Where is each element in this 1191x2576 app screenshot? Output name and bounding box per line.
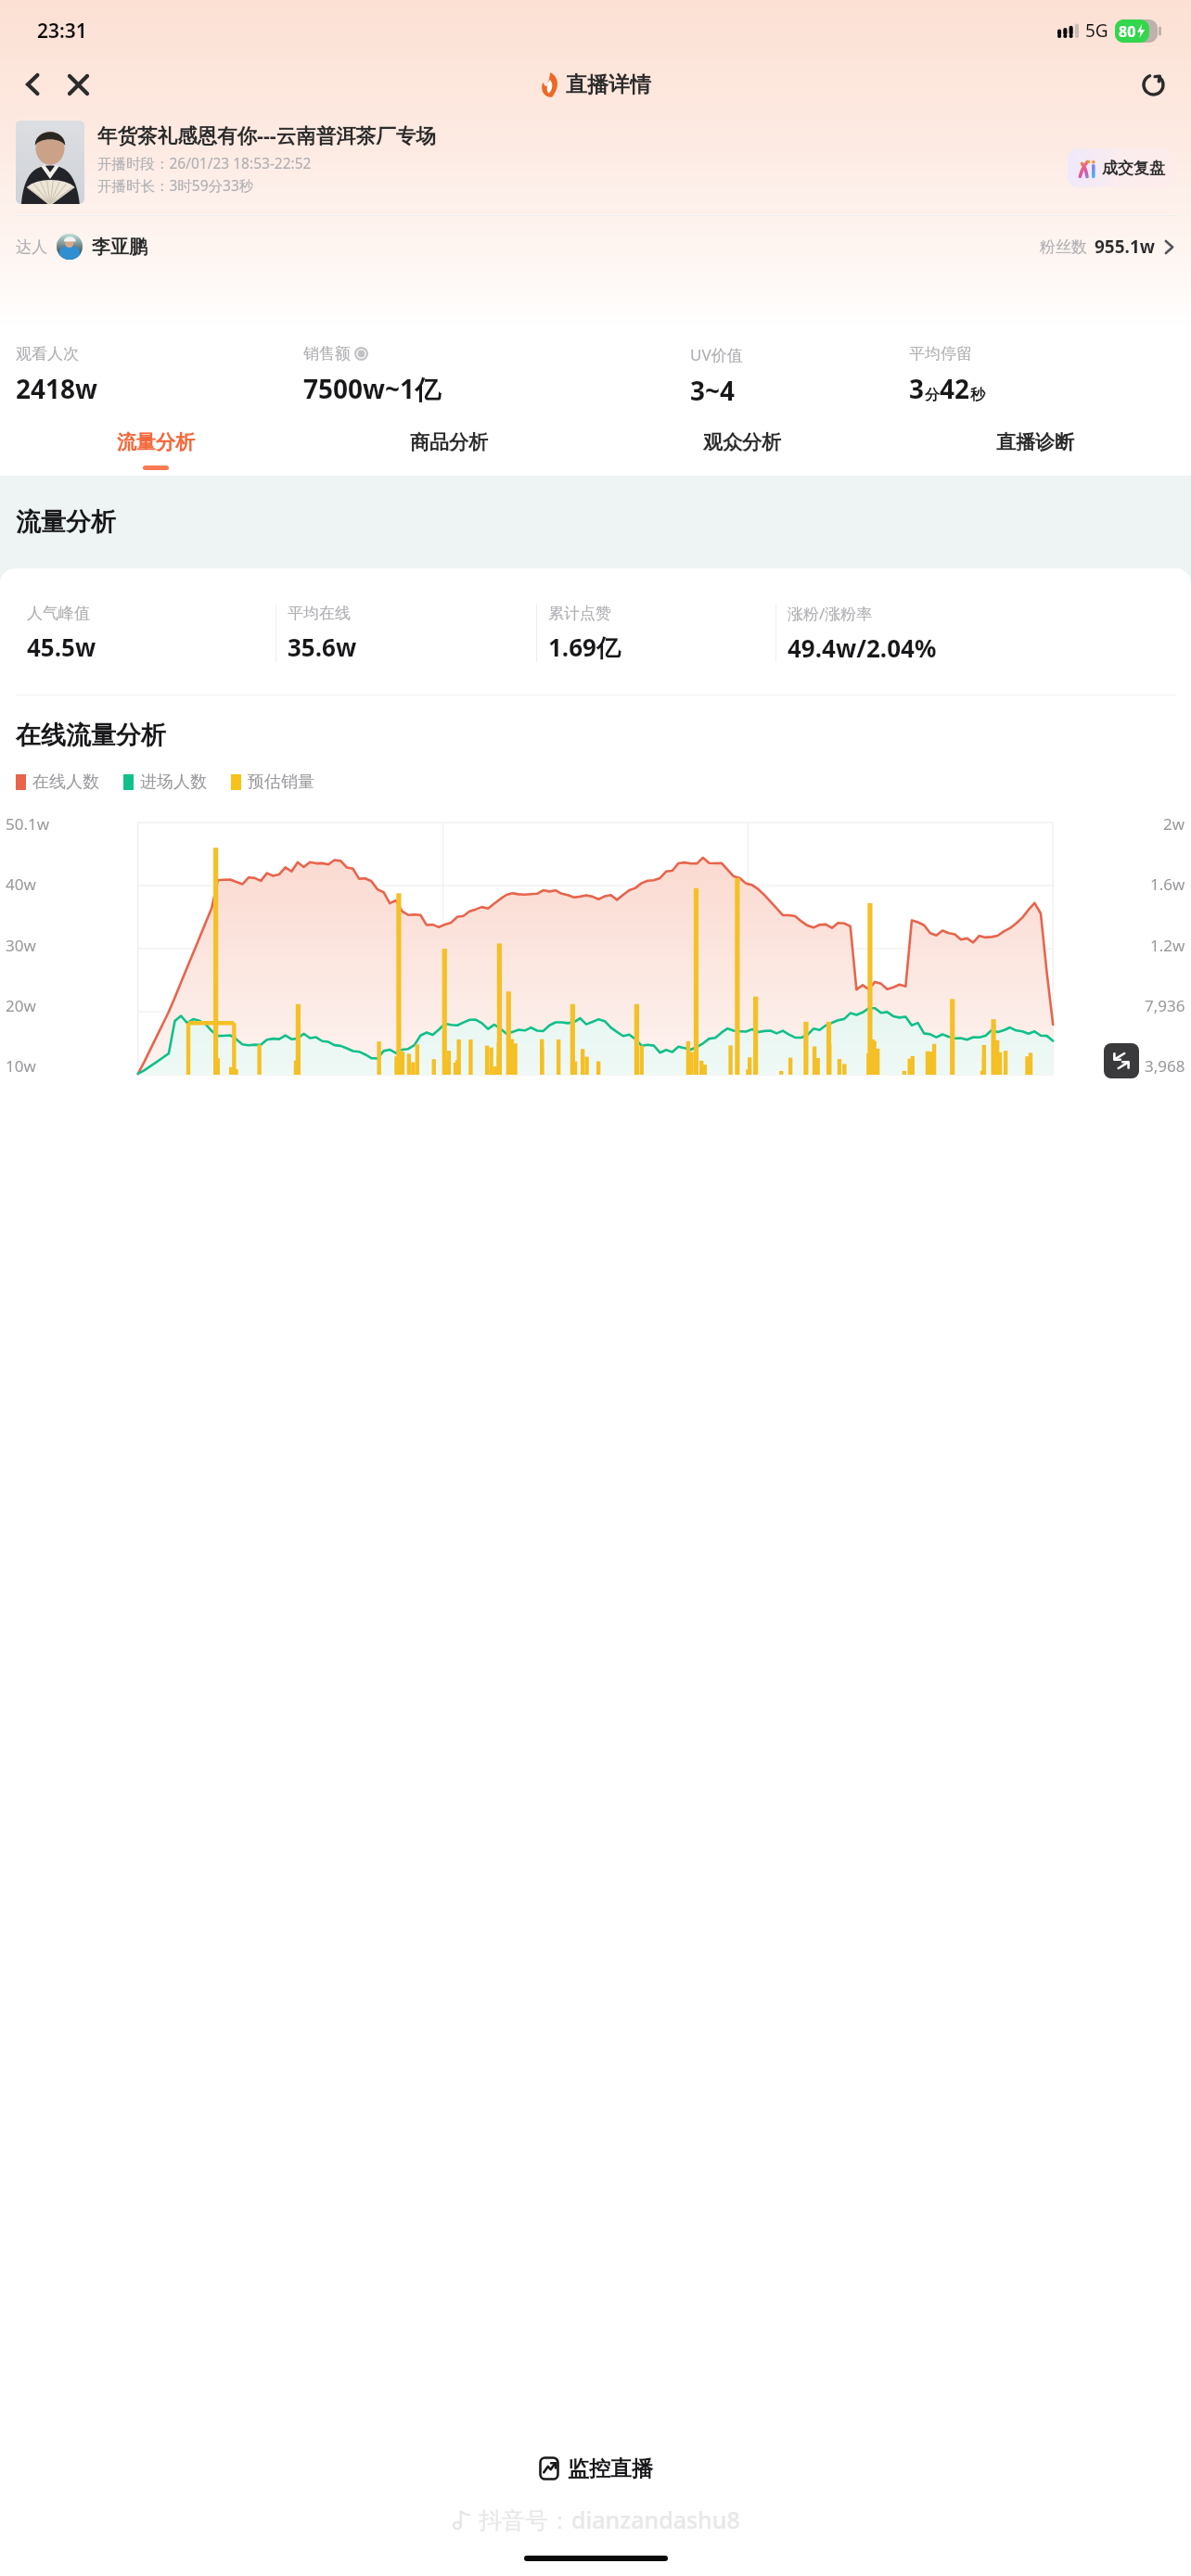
staticText: 平均在线 bbox=[288, 604, 351, 623]
staticText: 直播诊断 bbox=[996, 430, 1074, 454]
staticText: 7,936 bbox=[1145, 995, 1185, 1016]
staticText: 观众分析 bbox=[703, 430, 781, 454]
staticText: 分 bbox=[925, 386, 940, 404]
staticText: 1.69亿 bbox=[548, 631, 621, 664]
staticText: 10w bbox=[6, 1055, 36, 1077]
staticText: 开播时段：26/01/23 18:53-22:52 bbox=[97, 153, 312, 172]
button[interactable]: 成交复盘 bbox=[1068, 148, 1175, 187]
staticText: 955.1w bbox=[1095, 235, 1156, 259]
staticText: 80 bbox=[1119, 21, 1136, 42]
button[interactable]: Close bbox=[58, 64, 98, 105]
staticText: 2w bbox=[1163, 813, 1185, 835]
staticText: 直播详情 bbox=[566, 71, 651, 98]
button[interactable]: 进场人数 bbox=[123, 772, 207, 793]
staticText: 累计点赞 bbox=[548, 604, 611, 623]
staticText: 达人 bbox=[16, 237, 47, 257]
button[interactable]: Expand chart bbox=[1104, 1043, 1139, 1078]
staticText: 1.2w bbox=[1150, 935, 1185, 956]
staticText: 涨粉/涨粉率 bbox=[788, 603, 873, 624]
staticText: 年货茶礼感恩有你---云南普洱茶厂专场 bbox=[97, 121, 436, 148]
staticText: 成交复盘 bbox=[1102, 159, 1165, 178]
staticText: 20w bbox=[6, 995, 36, 1016]
button[interactable]: 流量分析 bbox=[9, 430, 302, 470]
staticText: 5G bbox=[1085, 19, 1108, 43]
staticText: UV价值 bbox=[690, 344, 743, 365]
staticText: 45.5w bbox=[27, 631, 96, 663]
staticText: 预估销量 bbox=[248, 772, 314, 793]
button[interactable]: 在线人数 bbox=[16, 772, 99, 793]
staticText: 3,968 bbox=[1145, 1055, 1185, 1077]
button[interactable]: Live thumbnail bbox=[16, 121, 84, 204]
staticText: 在线流量分析 bbox=[16, 720, 166, 751]
staticText: 商品分析 bbox=[410, 430, 488, 454]
staticText: 秒 bbox=[970, 386, 985, 404]
staticText: 进场人数 bbox=[140, 772, 207, 793]
staticText: 35.6w bbox=[288, 631, 357, 663]
staticText: 3~4 bbox=[690, 373, 736, 408]
staticText: 人气峰值 bbox=[27, 604, 90, 623]
staticText: 观看人次 bbox=[16, 344, 79, 363]
staticText: 粉丝数 bbox=[1040, 237, 1087, 257]
staticText: 抖音号：dianzandashu8 bbox=[479, 2504, 740, 2535]
button[interactable]: 监控直播 bbox=[0, 2446, 1191, 2491]
button[interactable]: 达人 bbox=[0, 225, 1191, 268]
staticText: 30w bbox=[6, 935, 36, 956]
button[interactable]: Share bbox=[1132, 63, 1174, 106]
staticText: 平均停留 bbox=[909, 344, 972, 363]
button[interactable]: Back bbox=[13, 64, 54, 105]
staticText: 1.6w bbox=[1150, 874, 1185, 895]
staticText: 3 bbox=[909, 371, 925, 406]
staticText: 销售额 bbox=[303, 344, 351, 363]
staticText: 40w bbox=[6, 874, 36, 895]
staticText: 23:31 bbox=[37, 18, 87, 45]
staticText: 开播时长：3时59分33秒 bbox=[97, 175, 254, 195]
staticText: 流量分析 bbox=[117, 430, 195, 454]
staticText: 49.4w/2.04% bbox=[788, 631, 937, 664]
staticText: 流量分析 bbox=[16, 506, 116, 538]
staticText: 7500w~1亿 bbox=[303, 371, 442, 406]
button[interactable]: 直播诊断 bbox=[889, 430, 1182, 470]
staticText: 2418w bbox=[16, 371, 98, 406]
staticText: 42 bbox=[940, 371, 970, 406]
button[interactable]: 观众分析 bbox=[595, 430, 889, 470]
button[interactable]: 商品分析 bbox=[302, 430, 595, 470]
staticText: 监控直播 bbox=[568, 2455, 653, 2482]
staticText: 在线人数 bbox=[32, 772, 99, 793]
button[interactable]: 预估销量 bbox=[231, 772, 314, 793]
staticText: 50.1w bbox=[6, 813, 50, 835]
staticText: 李亚鹏 bbox=[92, 236, 147, 259]
